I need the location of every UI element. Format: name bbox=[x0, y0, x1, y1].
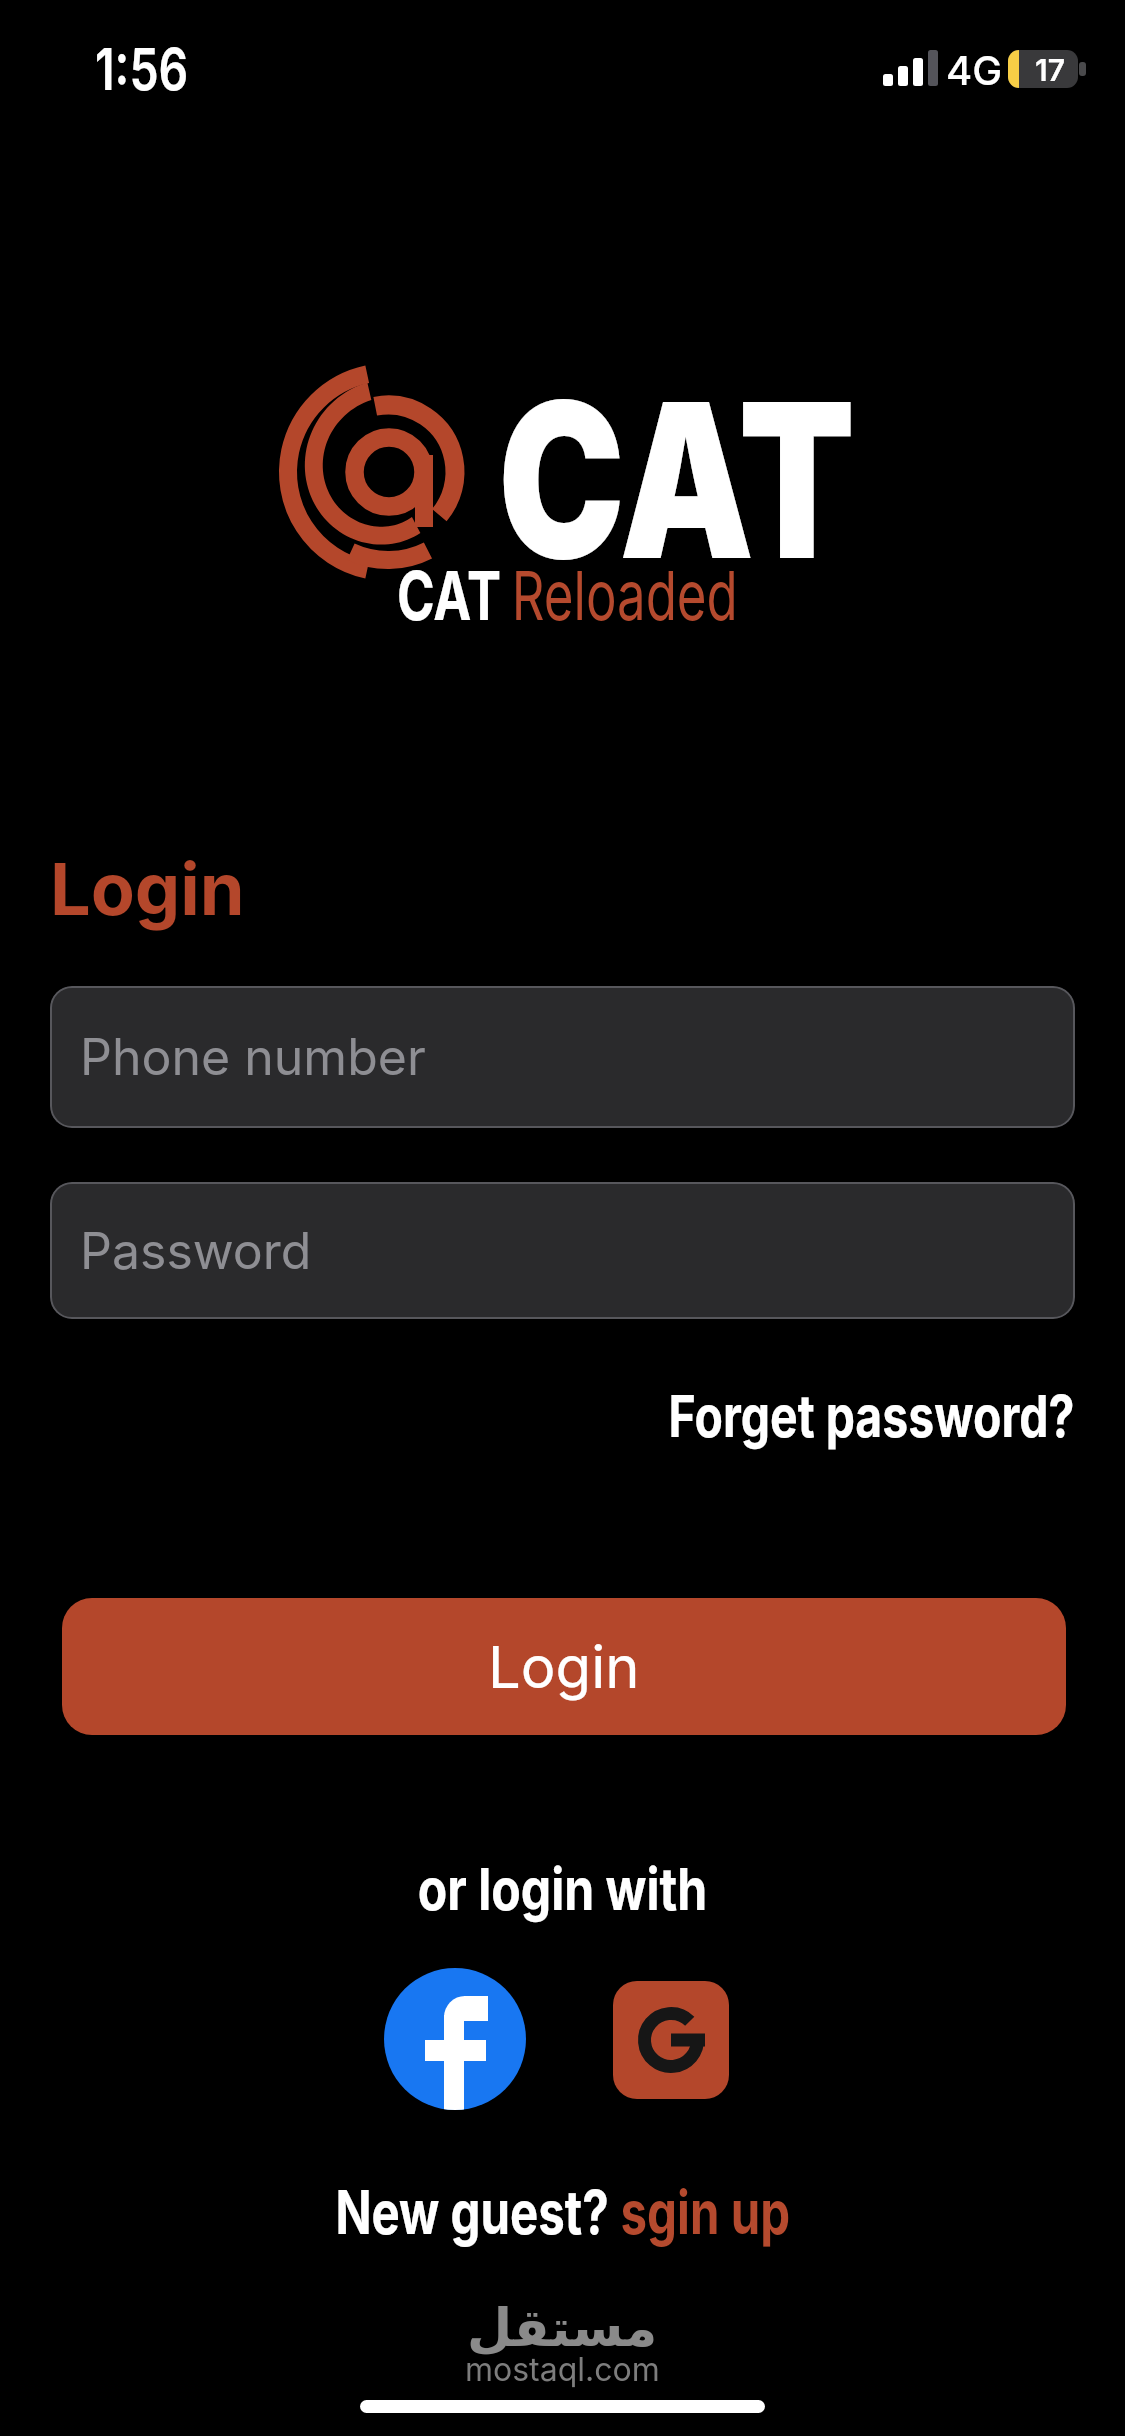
staticText: Phone number bbox=[80, 1027, 426, 1087]
staticText: 17 bbox=[1035, 52, 1065, 88]
button[interactable]: Phone number bbox=[50, 986, 1075, 1128]
button[interactable]: Password bbox=[50, 1182, 1075, 1319]
staticText: CAT bbox=[498, 350, 856, 610]
staticText: مستقل bbox=[467, 2298, 658, 2359]
button[interactable]: Forget password? bbox=[669, 1381, 1075, 1451]
staticText: 1:56 bbox=[95, 34, 189, 104]
button[interactable]: Login bbox=[62, 1598, 1066, 1735]
button[interactable] bbox=[613, 1981, 729, 2099]
staticText: Reloaded bbox=[512, 554, 738, 636]
staticText: New guest? bbox=[335, 2176, 621, 2249]
staticText: Login bbox=[488, 1632, 640, 1702]
staticText: or login with bbox=[418, 1854, 707, 1924]
staticText: Login bbox=[50, 845, 245, 932]
button[interactable] bbox=[384, 1968, 526, 2110]
staticText: 4G bbox=[946, 46, 1003, 94]
staticText: Password bbox=[80, 1221, 312, 1281]
staticText: mostaql.com bbox=[465, 2350, 660, 2389]
button[interactable]: sgin up bbox=[621, 2176, 790, 2249]
staticText: CAT bbox=[397, 554, 501, 636]
